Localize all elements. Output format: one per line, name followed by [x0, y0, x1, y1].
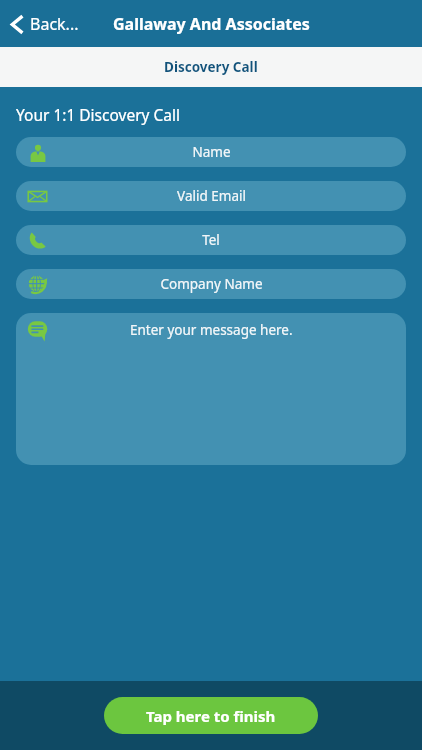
button[interactable]: Telephone [16, 225, 406, 255]
button[interactable]: Company Name [16, 269, 406, 299]
staticText: Tap here to finish [146, 706, 276, 726]
other: Valid Email [27, 186, 48, 207]
staticText: Valid Email [177, 187, 246, 205]
staticText: Name [192, 143, 231, 161]
other: Name [28, 143, 48, 163]
button[interactable]: Enter your message [16, 313, 406, 465]
button[interactable]: Tap here to finish [104, 697, 318, 734]
staticText: Back... [30, 13, 79, 35]
staticText: Tel [202, 231, 220, 249]
button[interactable]: Valid Email [16, 181, 406, 211]
staticText: Discovery Call [164, 58, 258, 76]
other: Enter your message [27, 320, 49, 342]
staticText: Enter your message here. [130, 321, 293, 339]
staticText: Your 1:1 Discovery Call [16, 104, 180, 125]
button[interactable]: Back... [0, 7, 87, 41]
other: Company Name [27, 274, 48, 295]
button[interactable]: Discovery Call [0, 47, 422, 87]
other: Telephone [28, 231, 47, 250]
button[interactable]: Name [16, 137, 406, 167]
staticText: Gallaway And Associates [113, 13, 310, 35]
staticText: Company Name [160, 275, 263, 293]
